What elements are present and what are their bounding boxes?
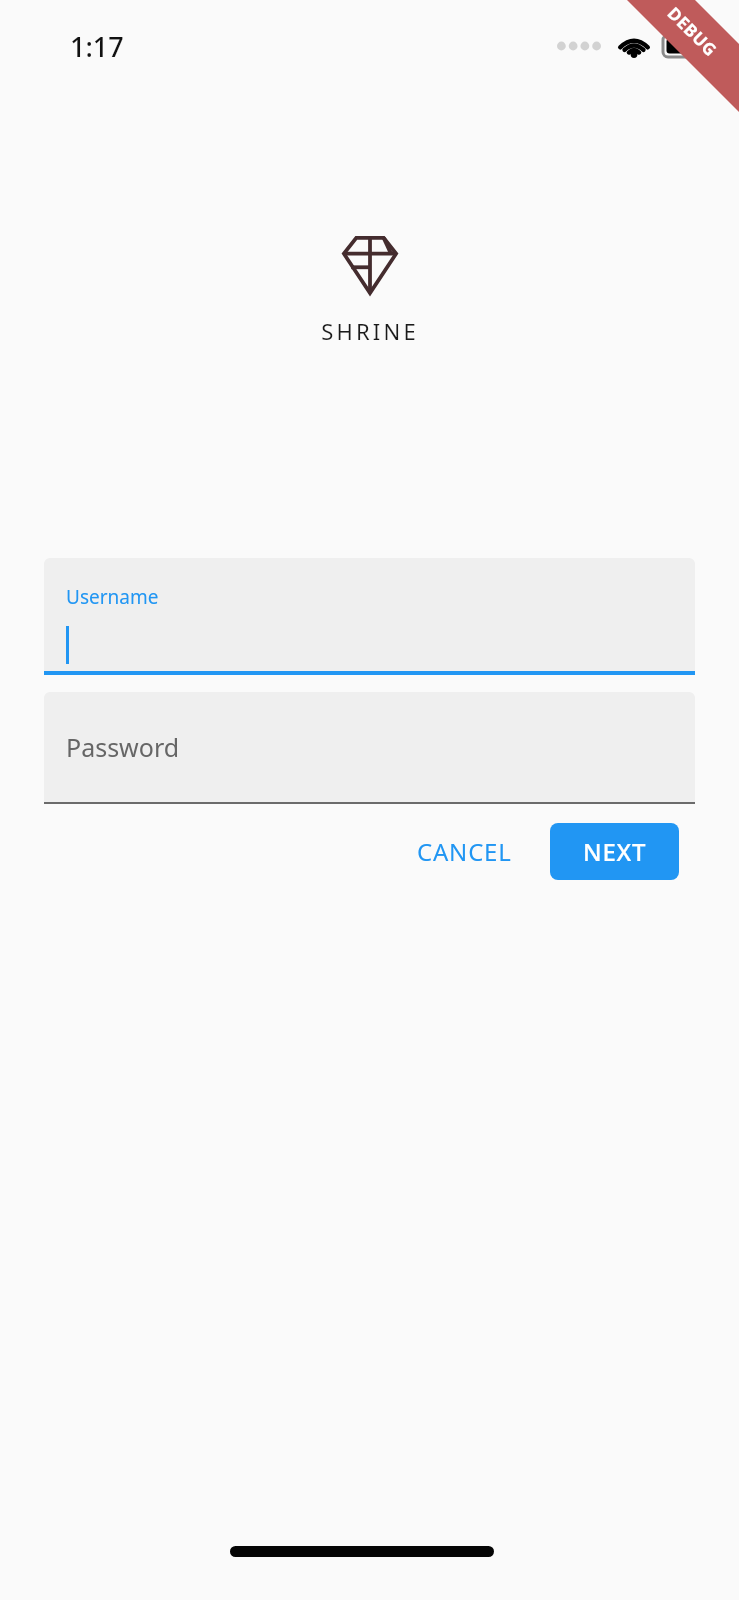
staticText: Password (66, 730, 180, 764)
other: Shrine logo (342, 236, 398, 295)
staticText: CANCEL (417, 835, 512, 868)
staticText: SHRINE (321, 316, 419, 346)
button[interactable]: Username (44, 558, 695, 675)
button[interactable]: CANCEL (395, 821, 534, 882)
staticText: DEBUG (663, 2, 722, 61)
staticText: Username (66, 584, 159, 610)
staticText: NEXT (583, 835, 647, 868)
staticText: 1:17 (70, 28, 124, 65)
button[interactable]: Password (44, 692, 695, 804)
button[interactable]: NEXT (550, 823, 679, 880)
